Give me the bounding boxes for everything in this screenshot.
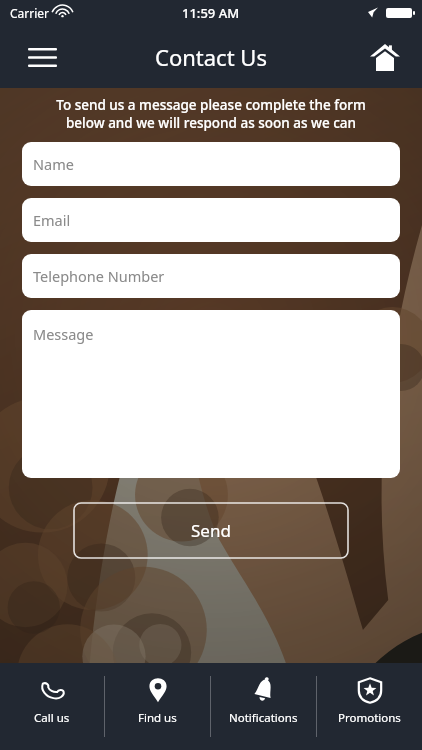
button[interactable]: Message [22,310,400,478]
button[interactable]: Find us [105,663,210,750]
button[interactable]: Send [73,502,349,559]
staticText: Call us [34,710,70,726]
staticText: Telephone Number [33,266,165,286]
button[interactable]: Email [22,198,400,242]
staticText: Notifications [229,710,298,726]
staticText: Contact Us [155,42,267,72]
button[interactable]: Notifications [211,663,316,750]
staticText: Find us [138,710,177,726]
button[interactable]: Menu [16,31,68,83]
button[interactable]: Call us [0,663,104,750]
staticText: Message [33,324,94,344]
staticText: Send [191,519,231,542]
staticText: 11:59 AM [182,4,240,22]
staticText: Carrier [10,5,50,21]
staticText: Email [33,210,71,230]
staticText: Promotions [338,710,401,726]
button[interactable]: Home [360,32,410,82]
staticText: To send us a message please complete the… [14,96,408,132]
button[interactable]: Promotions [317,663,422,750]
button[interactable]: Telephone Number [22,254,400,298]
button[interactable]: Name [22,142,400,186]
staticText: Name [33,154,74,174]
